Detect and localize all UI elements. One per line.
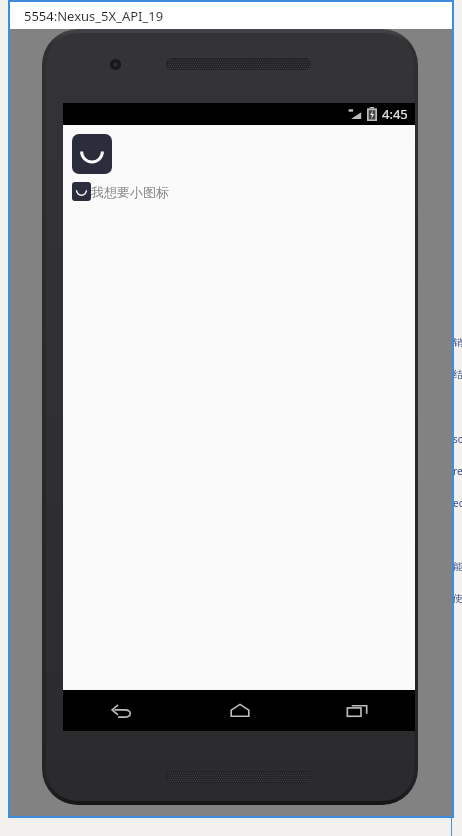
staticText: 我想要小图标 xyxy=(91,184,169,200)
button[interactable]: 5554:Nexus_5X_API_19 xyxy=(10,2,452,29)
staticText: so xyxy=(453,432,462,446)
staticText: 4:45 xyxy=(382,105,408,123)
button[interactable]: Back xyxy=(63,690,181,731)
button[interactable]: 我想要小图标 xyxy=(72,182,169,201)
staticText: re xyxy=(453,464,462,478)
staticText: ec xyxy=(453,496,462,510)
staticText: 5554:Nexus_5X_API_19 xyxy=(24,7,164,25)
staticText: 能 xyxy=(453,560,462,573)
button[interactable]: Recent apps xyxy=(298,690,415,731)
button[interactable]: App icon xyxy=(72,134,112,174)
button[interactable]: Home xyxy=(181,690,298,731)
staticText: 使 xyxy=(453,592,462,605)
staticText: 结 xyxy=(453,368,462,381)
staticText: 销 xyxy=(453,336,462,349)
